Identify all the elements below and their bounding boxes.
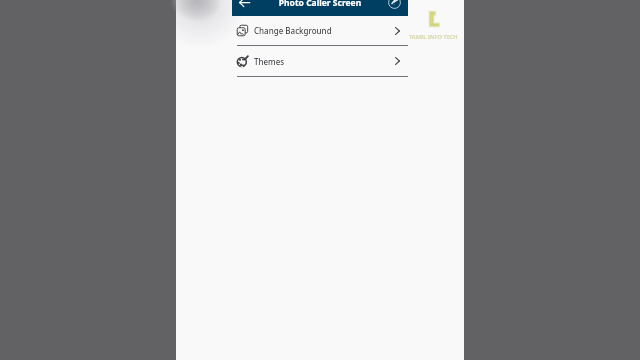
staticText: Themes	[254, 56, 386, 67]
button[interactable]: Premium	[386, 0, 403, 10]
button[interactable]: Change Background	[232, 16, 408, 45]
button[interactable]: Navigate back	[235, 0, 253, 10]
button[interactable]: Themes	[232, 46, 408, 76]
staticText: Change Background	[254, 25, 386, 36]
staticText: Photo Caller Screen	[232, 0, 408, 9]
staticText: TAMIL INFO TECH	[409, 33, 458, 41]
